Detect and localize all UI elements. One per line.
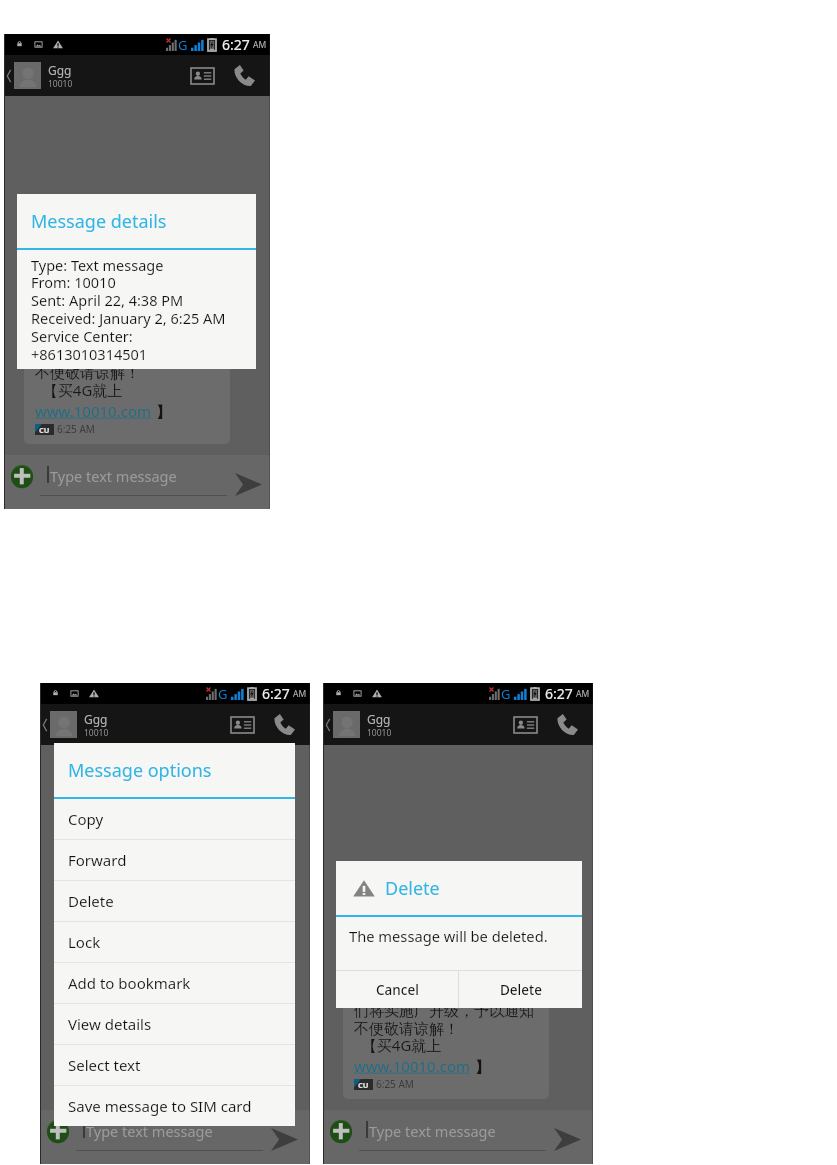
staticText: Delete [500,981,542,999]
staticText: CU [39,425,50,435]
staticText: G [501,685,511,703]
button[interactable]: Select text [54,1045,295,1085]
staticText: Ggg [48,62,72,78]
button[interactable]: Call [264,704,305,745]
staticText: Save message to SIM card [68,1096,252,1116]
button[interactable]: Delete [459,971,582,1008]
staticText: 6:25 AM [376,1077,414,1091]
staticText: 】 [152,401,171,421]
button[interactable]: Forward [54,840,295,880]
staticText: Type: Text message From: 10010 Sent: Apr… [31,255,226,365]
staticText: Message options [68,758,212,783]
staticText: Type text message [50,466,177,486]
staticText: www.10010.com [354,1056,471,1076]
staticText: Delete [68,891,114,911]
button[interactable]: Delete [54,881,295,921]
button[interactable]: Save message to SIM card [54,1086,295,1126]
staticText: 10010 [84,727,109,739]
button[interactable]: Send [271,1128,300,1153]
button[interactable]: Back [4,55,14,96]
staticText: 】 [471,1056,490,1076]
staticText: Cancel [376,981,419,999]
staticText: Copy [68,809,104,829]
staticText: Add to bookmark [68,973,191,993]
staticText: 6:27 [262,684,290,703]
staticText: View details [68,1014,152,1034]
staticText: Delete [385,876,440,901]
staticText: Ggg [84,711,108,727]
staticText: Message details [31,209,167,234]
button[interactable]: Back [40,704,50,745]
button[interactable]: Send [554,1128,583,1153]
button[interactable]: Contact details [181,55,224,96]
button[interactable]: Cancel [336,971,458,1008]
staticText: Type text message [86,1121,213,1141]
staticText: G [178,36,188,54]
button[interactable]: Contact details [504,704,547,745]
staticText: 10010 [48,78,73,90]
staticText: Lock [68,932,101,952]
staticText: Forward [68,850,127,870]
button[interactable]: Add attachment [11,465,33,487]
button[interactable]: Call [224,55,265,96]
staticText: 6:25 AM [57,422,95,436]
staticText: CU [75,1080,86,1090]
staticText: www.10010.com [71,1056,188,1076]
button[interactable]: Copy [54,799,295,839]
staticText: AM [253,39,267,51]
staticText: 们将实施广升级，予以通知 不便敬请谅解！ 【买4G就上 [354,1002,534,1056]
staticText: 不便敬请谅解！ 【买4G就上 [35,364,140,401]
staticText: www.10010.com [35,401,152,421]
staticText: The message will be deleted. [349,926,548,946]
staticText: AM [576,688,590,700]
staticText: 6:27 [545,684,573,703]
button[interactable]: Send [235,473,264,498]
staticText: G [218,685,228,703]
button[interactable]: Add to bookmark [54,963,295,1003]
button[interactable]: Add attachment [47,1120,69,1142]
staticText: Type text message [369,1121,496,1141]
staticText: Select text [68,1055,141,1075]
staticText: 6:27 [222,35,250,54]
button[interactable]: Add attachment [330,1120,352,1142]
staticText: CU [358,1080,369,1090]
button[interactable]: Back [323,704,333,745]
button[interactable]: Call [547,704,588,745]
staticText: 10010 [367,727,392,739]
button[interactable]: Contact details [221,704,264,745]
staticText: 6:25 AM [93,1077,131,1091]
staticText: 们将实施广升级，予以通知 不便敬请谅解！ 【买4G就上 [71,1002,251,1056]
button[interactable]: View details [54,1004,295,1044]
staticText: Ggg [367,711,391,727]
staticText: AM [293,688,307,700]
button[interactable]: Lock [54,922,295,962]
